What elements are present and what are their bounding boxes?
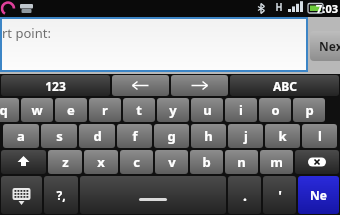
button[interactable]: rt point: [2,19,306,70]
staticText: g [167,127,176,145]
staticText: 7:03 [316,1,338,16]
button[interactable]: v [155,150,188,174]
staticText: . [243,186,247,205]
button[interactable]: e [55,98,87,122]
button[interactable]: Space [80,176,226,214]
staticText: w [31,101,43,119]
button[interactable]: p [293,98,325,122]
button[interactable]: k [265,124,300,148]
staticText: Next [319,38,340,54]
button[interactable]: i [225,98,257,122]
button[interactable]: m [260,150,293,174]
staticText: m [270,153,283,171]
staticText: e [67,101,75,119]
staticText: v [168,153,176,171]
button[interactable]: Switch keyboard [1,176,42,214]
staticText: n [237,153,246,171]
button[interactable]: x [84,150,118,174]
staticText: k [278,127,287,145]
button[interactable]: ABC [230,75,339,96]
button[interactable]: o [259,98,291,122]
staticText: i [239,101,243,119]
button[interactable]: Move left [112,75,169,96]
staticText: ?, [56,187,66,203]
button[interactable]: 123 [1,75,110,96]
staticText: h [204,127,213,145]
button[interactable]: f [117,124,152,148]
staticText: f [132,127,138,145]
staticText: z [62,153,69,171]
button[interactable]: b [190,150,223,174]
staticText: p [305,101,314,119]
button[interactable]: l [302,124,337,148]
staticText: q [0,101,8,119]
staticText: o [271,101,280,119]
button[interactable]: Next [310,31,340,61]
staticText: ABC [273,78,297,94]
staticText: 123 [45,78,66,94]
button[interactable]: u [191,98,223,122]
button[interactable]: ?, [44,176,78,214]
staticText: t [136,101,142,119]
staticText: c [133,153,140,171]
staticText: u [203,101,212,119]
staticText: s [56,127,63,145]
button[interactable]: a [3,124,39,148]
button[interactable]: ' [263,176,296,214]
staticText: x [97,153,105,171]
button[interactable]: Shift [1,150,46,174]
button[interactable]: h [191,124,226,148]
button[interactable]: n [225,150,258,174]
button[interactable]: y [157,98,189,122]
button[interactable]: c [120,150,153,174]
staticText: r [102,101,108,119]
staticText: l [318,127,322,145]
button[interactable]: d [79,124,115,148]
button[interactable]: Move right [171,75,228,96]
staticText: d [93,127,102,145]
button[interactable]: Next [298,176,339,214]
button[interactable]: Backspace [295,150,339,174]
button[interactable]: w [21,98,53,122]
staticText: j [244,127,248,145]
button[interactable]: t [123,98,155,122]
button[interactable]: g [154,124,189,148]
button[interactable]: j [228,124,263,148]
button[interactable]: q [0,98,19,122]
button[interactable]: s [41,124,77,148]
staticText: Ne [310,187,327,203]
staticText: b [202,153,211,171]
staticText: ' [278,186,282,205]
staticText: rt point: [2,24,51,42]
button[interactable]: z [48,150,82,174]
staticText: a [17,127,25,145]
staticText: y [169,101,177,119]
button[interactable]: . [228,176,261,214]
button[interactable]: r [89,98,121,122]
